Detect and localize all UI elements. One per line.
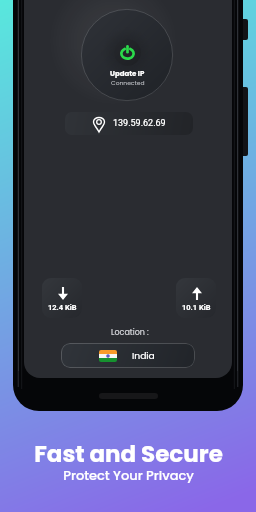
staticText: Connected [111, 79, 145, 87]
staticText: India [132, 349, 155, 362]
button[interactable]: India [61, 343, 195, 368]
button[interactable]: Update IP [81, 9, 173, 101]
button[interactable]: 12.4 KiB [42, 278, 82, 318]
staticText: Location : [111, 327, 149, 338]
staticText: 12.4 KiB [48, 303, 77, 312]
staticText: 10.1 KiB [182, 303, 211, 312]
staticText: Protect Your Privacy [63, 466, 194, 484]
button[interactable]: 139.59.62.69 [65, 112, 193, 135]
staticText: Update IP [110, 69, 145, 79]
staticText: 139.59.62.69 [113, 118, 166, 129]
button[interactable]: 10.1 KiB [176, 278, 216, 318]
staticText: Fast and Secure [34, 438, 223, 470]
